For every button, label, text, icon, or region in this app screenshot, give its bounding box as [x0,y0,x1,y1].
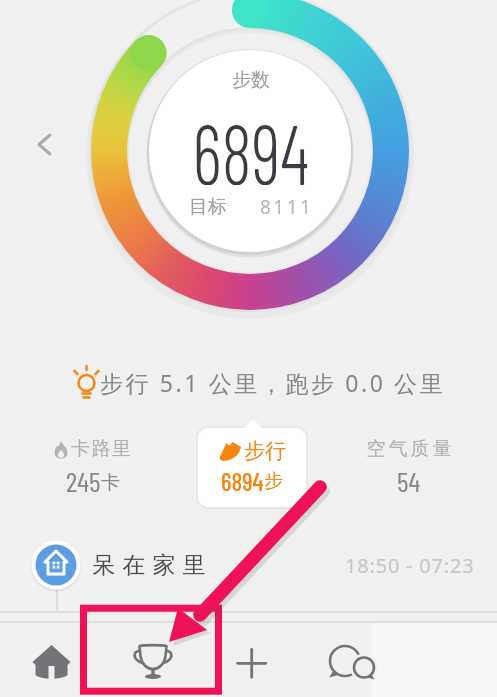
staticText: 245 [66,464,101,498]
staticText: 步行 5.1 公里，跑步 0.0 公里 [100,367,446,398]
staticText: 54 [397,464,421,498]
staticText: 空气质量 [365,437,453,461]
button[interactable]: 呆在家里 [28,538,478,592]
staticText: 步行 [244,438,286,464]
button[interactable]: 空气质量 [349,436,469,496]
button[interactable] [125,634,181,690]
staticText: 步 [264,469,283,493]
staticText: 目标 [189,195,227,219]
button[interactable]: 步行 5.1 公里，跑步 0.0 公里 [62,362,446,402]
staticText: 6894 [192,101,309,185]
button[interactable]: 步行 [198,428,306,507]
button[interactable] [322,634,384,690]
staticText: 18:50 - 07:23 [345,552,475,579]
button[interactable] [24,126,60,164]
staticText: 步数 [232,68,270,92]
staticText: 呆在家里 [89,551,209,580]
button[interactable] [24,634,80,690]
button[interactable] [224,634,280,690]
staticText: 8111 [260,194,314,220]
button[interactable]: 卡路里 [33,436,153,496]
staticText: 卡 [101,471,120,495]
staticText: 6894 [221,466,264,496]
staticText: 卡路里 [71,437,133,461]
